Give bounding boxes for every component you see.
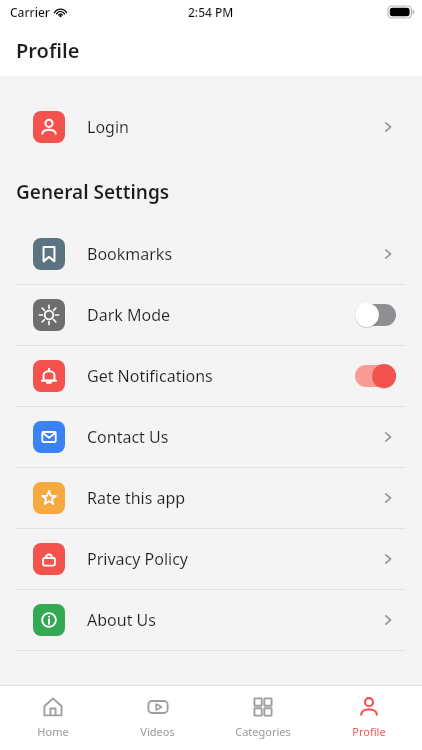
- staticText: Contact Us: [87, 426, 380, 448]
- staticText: Videos: [140, 724, 175, 739]
- staticText: Bookmarks: [87, 243, 380, 265]
- staticText: Get Notifications: [87, 365, 355, 387]
- staticText: Carrier: [10, 4, 50, 20]
- button[interactable]: Contact Us: [0, 407, 422, 467]
- button[interactable]: Profile: [316, 686, 422, 750]
- button[interactable]: Privacy Policy: [0, 529, 422, 589]
- button[interactable]: Login: [0, 97, 422, 157]
- button[interactable]: Videos: [105, 686, 210, 750]
- staticText: Login: [87, 116, 380, 138]
- button[interactable]: Categories: [210, 686, 316, 750]
- staticText: Categories: [235, 724, 291, 739]
- staticText: 2:54 PM: [188, 4, 234, 20]
- button[interactable]: Bookmarks: [0, 224, 422, 284]
- staticText: Home: [37, 724, 69, 739]
- button[interactable]: Get Notifications: [0, 346, 422, 406]
- button[interactable]: Rate this app: [0, 468, 422, 528]
- button[interactable]: Toggle on: [355, 364, 396, 388]
- staticText: Dark Mode: [87, 304, 355, 326]
- staticText: Rate this app: [87, 487, 380, 509]
- staticText: Privacy Policy: [87, 548, 380, 570]
- staticText: General Settings: [16, 179, 170, 205]
- button[interactable]: Toggle off: [355, 303, 396, 327]
- button[interactable]: Home: [0, 686, 105, 750]
- button[interactable]: About Us: [0, 590, 422, 650]
- staticText: Profile: [352, 724, 386, 739]
- staticText: Profile: [16, 37, 80, 64]
- button[interactable]: Dark Mode: [0, 285, 422, 345]
- staticText: About Us: [87, 609, 380, 631]
